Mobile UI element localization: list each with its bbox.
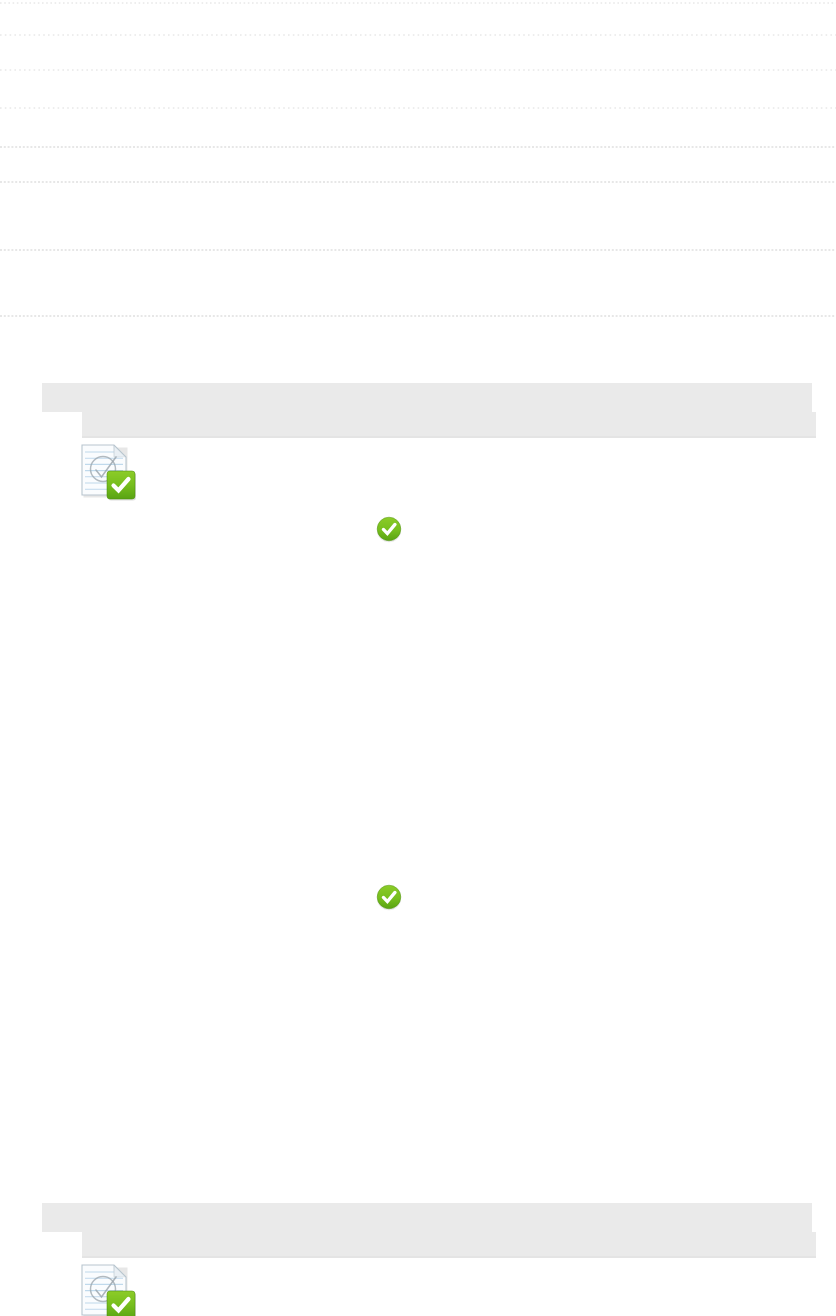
button[interactable]: Completed [0,0,836,1316]
button[interactable]: Completed document record 1 [0,0,836,1316]
button[interactable]: Completed document record 2 [0,0,836,1316]
button[interactable]: Completed [0,0,836,1316]
